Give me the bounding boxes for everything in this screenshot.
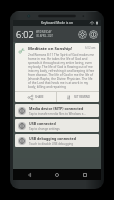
button[interactable]: Meditate on Sonship! (15, 43, 99, 102)
button[interactable]: Settings (78, 30, 87, 39)
staticText: 30 APRIL 2021 (36, 34, 54, 38)
staticText: 6:02 am (85, 46, 96, 50)
other: Set reminder (67, 95, 72, 100)
staticText: USB debugging connected (29, 136, 76, 141)
staticText: 2nd Romans 8:11 The Spirit of God makes … (28, 53, 96, 89)
staticText: SHARE (35, 95, 44, 99)
staticText: WEDNESDAY (36, 30, 52, 34)
staticText: SET REMIND (74, 95, 90, 99)
button[interactable]: Back (19, 169, 41, 180)
staticText: Meditate on Sonship! (28, 46, 85, 52)
button[interactable]: Set reminder (57, 92, 99, 102)
other: Share (28, 95, 33, 100)
staticText: Tap to change settings (29, 127, 60, 131)
button[interactable]: Share (15, 92, 56, 102)
button[interactable]: Quick settings (89, 30, 98, 39)
button[interactable]: Media device (MTP) connected (15, 104, 99, 117)
button[interactable]: USB connected (15, 119, 99, 132)
button[interactable]: Recents (74, 169, 96, 180)
staticText: Touch to disable USB debugging (29, 142, 74, 146)
staticText: 6:02 (16, 28, 34, 40)
staticText: USB connected (29, 121, 56, 126)
button[interactable]: USB debugging connected (15, 134, 99, 147)
staticText: Keyboard Mode is on (41, 21, 73, 25)
button[interactable]: Home (46, 169, 68, 180)
staticText: Media device (MTP) connected (29, 106, 84, 111)
staticText: Tap to transfer media files to Windows e… (29, 112, 86, 116)
